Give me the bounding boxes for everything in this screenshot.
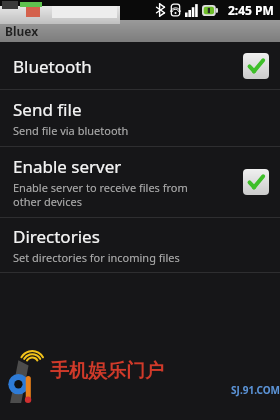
button[interactable]: Bluetooth bbox=[0, 43, 280, 89]
staticText: 手机娱乐门户 bbox=[50, 359, 164, 383]
button[interactable]: Directories bbox=[0, 218, 280, 272]
button[interactable]: Enable server bbox=[0, 147, 280, 217]
staticText: Enable server to receive files from othe… bbox=[13, 180, 188, 209]
staticText: Directories bbox=[13, 225, 100, 248]
staticText: Bluex bbox=[5, 23, 39, 39]
staticText: SJ.91.COM bbox=[50, 383, 280, 397]
button[interactable]: Toggle bbox=[243, 169, 269, 195]
staticText: Send file bbox=[13, 98, 82, 121]
staticText: Send file via bluetooth bbox=[13, 123, 129, 138]
button[interactable]: Send file bbox=[0, 90, 280, 146]
staticText: 2:45 PM bbox=[228, 2, 274, 18]
staticText: Set directories for incoming files bbox=[13, 250, 180, 265]
staticText: Enable server bbox=[13, 155, 122, 178]
button[interactable]: Toggle bbox=[243, 53, 269, 79]
staticText: Bluetooth bbox=[13, 55, 92, 78]
